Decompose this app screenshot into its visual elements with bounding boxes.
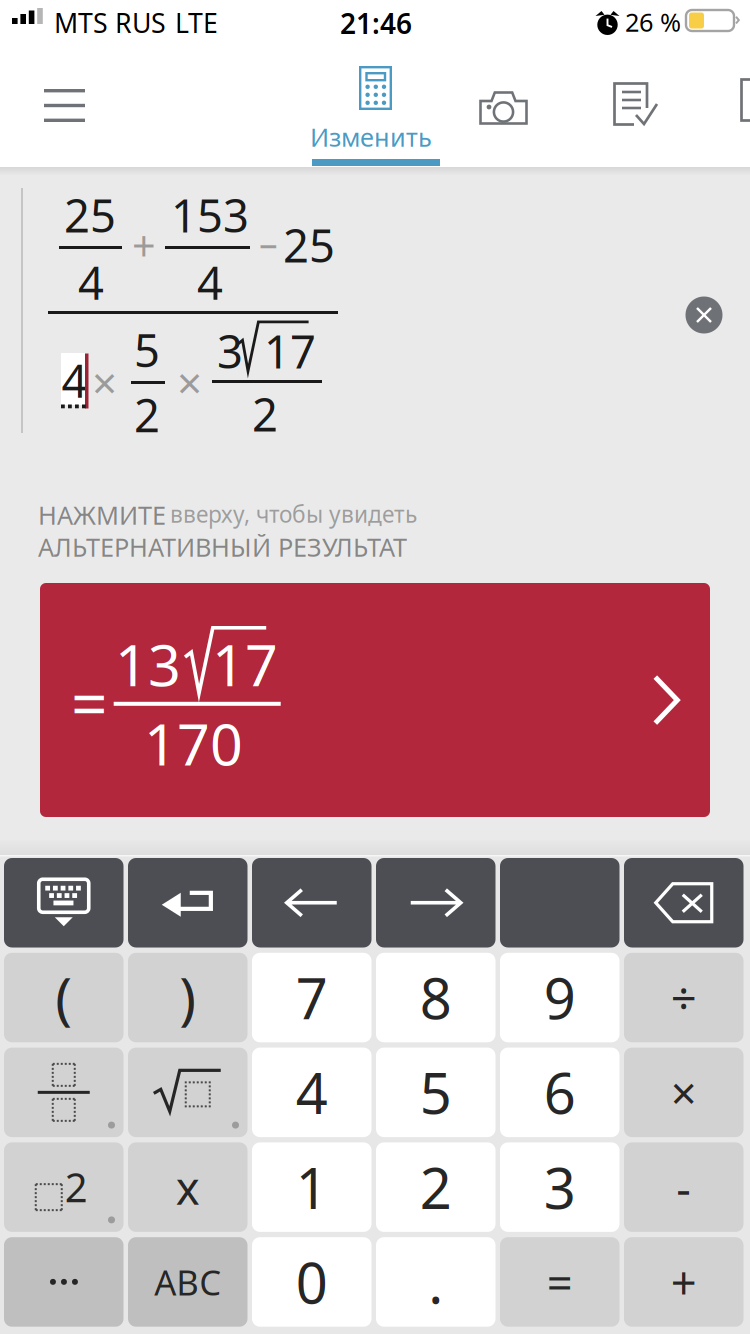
button[interactable]: 2: [376, 1142, 495, 1232]
button[interactable]: Move left: [252, 858, 371, 947]
staticText: 13: [115, 626, 181, 702]
staticText: ABC: [154, 1259, 221, 1305]
staticText: 153: [171, 185, 249, 245]
button[interactable]: 6: [500, 1048, 619, 1137]
staticText: АЛЬТЕРНАТИВНЫЙ РЕЗУЛЬТАТ: [38, 530, 407, 564]
staticText: ): [179, 960, 196, 1035]
staticText: =: [71, 660, 108, 745]
button[interactable]: 9: [500, 953, 619, 1042]
staticText: 3: [544, 1150, 576, 1224]
staticText: 8: [420, 960, 452, 1035]
staticText: 2: [252, 384, 278, 444]
button[interactable]: ÷: [624, 953, 743, 1042]
staticText: ×: [92, 353, 117, 411]
button[interactable]: ×: [624, 1048, 743, 1137]
staticText: =: [547, 1252, 573, 1312]
button[interactable]: Fraction: [4, 1048, 123, 1137]
button[interactable]: Clear: [672, 283, 736, 347]
staticText: +: [671, 1252, 697, 1312]
staticText: 3: [217, 321, 243, 381]
button[interactable]: (: [4, 953, 123, 1042]
staticText: 2: [65, 1160, 88, 1213]
staticText: 6: [544, 1055, 576, 1130]
button[interactable]: ABC: [128, 1237, 247, 1327]
staticText: 26 %: [625, 5, 681, 39]
staticText: 25: [283, 215, 335, 275]
button[interactable]: 5: [376, 1048, 495, 1137]
button[interactable]: Изменить: [302, 44, 448, 167]
staticText: 4: [296, 1055, 328, 1130]
button[interactable]: Return: [128, 858, 247, 947]
button[interactable]: Space: [500, 858, 619, 947]
button[interactable]: 8: [376, 953, 495, 1042]
button[interactable]: Square root: [128, 1048, 247, 1137]
staticText: 25: [64, 185, 116, 245]
staticText: 4: [78, 252, 104, 312]
staticText: вверху, чтобы увидеть: [170, 499, 417, 529]
staticText: 9: [544, 960, 576, 1035]
button[interactable]: Notebook: [738, 44, 750, 167]
button[interactable]: More: [4, 1237, 123, 1327]
button[interactable]: 1: [252, 1142, 371, 1232]
staticText: 1: [296, 1150, 328, 1224]
staticText: 5: [134, 319, 160, 380]
staticText: 2: [134, 384, 160, 445]
staticText: 7: [296, 960, 328, 1035]
staticText: MTS RUS: [54, 5, 166, 40]
button[interactable]: Menu: [0, 44, 128, 167]
button[interactable]: x: [128, 1142, 247, 1232]
staticText: .: [428, 1245, 443, 1319]
button[interactable]: -: [624, 1142, 743, 1232]
staticText: НАЖМИТЕ: [38, 498, 166, 532]
staticText: x: [176, 1157, 200, 1217]
staticText: 0: [296, 1245, 328, 1319]
button[interactable]: ): [128, 953, 247, 1042]
staticText: ×: [177, 353, 202, 411]
staticText: LTE: [175, 5, 218, 40]
staticText: -: [676, 1157, 691, 1217]
staticText: Изменить: [310, 120, 432, 154]
button[interactable]: =: [500, 1237, 619, 1327]
staticText: 2: [420, 1150, 452, 1224]
staticText: 4: [197, 252, 223, 312]
staticText: 5: [420, 1055, 452, 1130]
button[interactable]: =: [40, 583, 710, 817]
staticText: 4: [61, 350, 87, 410]
button[interactable]: 4: [252, 1048, 371, 1137]
button[interactable]: Solutions: [568, 44, 692, 167]
staticText: 17: [212, 626, 278, 702]
staticText: ×: [671, 1062, 697, 1122]
staticText: (: [55, 960, 72, 1035]
staticText: 170: [144, 705, 243, 781]
button[interactable]: Power: [4, 1142, 123, 1232]
staticText: –: [259, 218, 278, 268]
button[interactable]: 3: [500, 1142, 619, 1232]
staticText: 21:46: [340, 4, 412, 42]
staticText: ÷: [671, 967, 697, 1028]
button[interactable]: 7: [252, 953, 371, 1042]
staticText: +: [132, 218, 156, 273]
button[interactable]: 0: [252, 1237, 371, 1327]
staticText: 17: [264, 321, 316, 381]
button[interactable]: Move right: [376, 858, 495, 947]
button[interactable]: +: [624, 1237, 743, 1327]
button[interactable]: Delete: [624, 858, 743, 947]
button[interactable]: .: [376, 1237, 495, 1327]
button[interactable]: Hide keyboard: [4, 858, 123, 947]
button[interactable]: Camera: [440, 44, 564, 167]
